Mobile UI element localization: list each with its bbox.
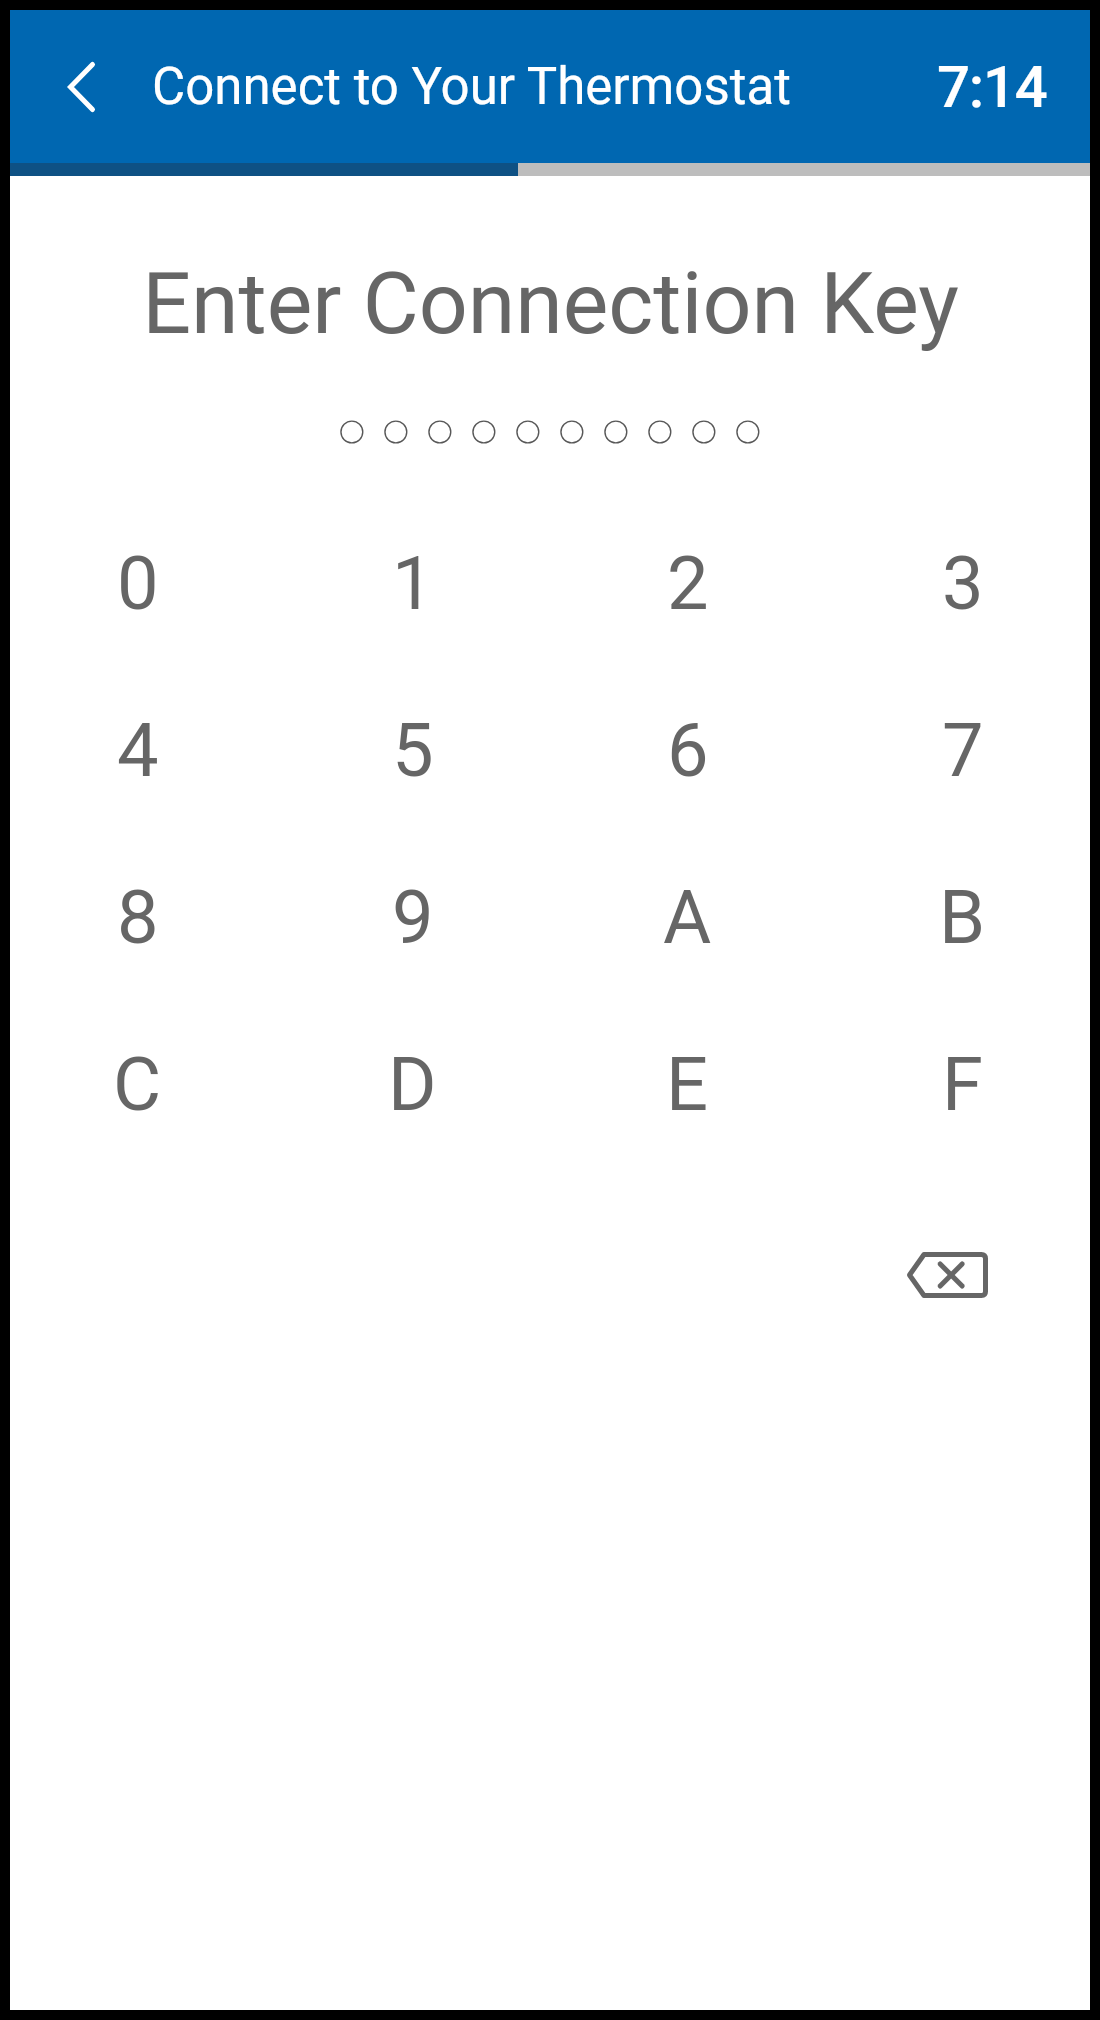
staticText: 0 [117,540,159,627]
staticText: 2 [667,540,709,627]
staticText: D [388,1041,437,1128]
staticText: 5 [392,707,434,794]
button[interactable]: F [825,1001,1100,1168]
button[interactable]: 9 [275,834,550,1001]
staticText: 4 [117,707,159,794]
button[interactable]: 5 [275,667,550,834]
button[interactable]: 4 [0,667,275,834]
staticText: C [113,1041,162,1128]
button[interactable]: Backspace [825,1168,1100,1368]
button[interactable]: 8 [0,834,275,1001]
button[interactable]: 0 [0,500,275,667]
staticText: B [939,874,986,961]
staticText: 1 [392,540,434,627]
button[interactable]: 2 [550,500,825,667]
button[interactable]: 7 [825,667,1100,834]
button[interactable]: D [275,1001,550,1168]
staticText: F [942,1041,983,1128]
button[interactable]: 6 [550,667,825,834]
staticText: 7:14 [937,53,1047,121]
staticText: Connect to Your Thermostat [152,57,791,117]
button[interactable]: 3 [825,500,1100,667]
button[interactable]: Back [24,29,139,144]
staticText: Enter Connection Key [142,253,959,354]
staticText: 8 [117,874,159,961]
staticText: E [666,1041,709,1128]
button[interactable]: B [825,834,1100,1001]
button[interactable]: E [550,1001,825,1168]
button[interactable]: A [550,834,825,1001]
staticText: 9 [392,874,434,961]
staticText: A [663,874,712,961]
staticText: 7 [942,707,984,794]
staticText: 3 [942,540,984,627]
staticText: 6 [667,707,709,794]
button[interactable]: C [0,1001,275,1168]
button[interactable]: 1 [275,500,550,667]
